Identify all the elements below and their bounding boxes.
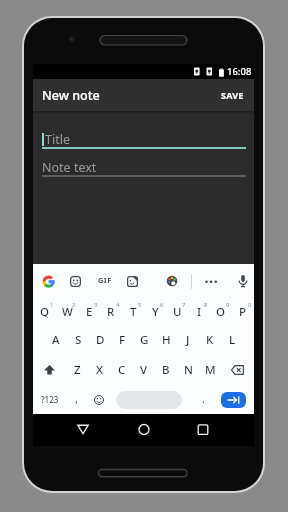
staticText: 2 <box>72 301 76 309</box>
button[interactable] <box>127 276 138 287</box>
button[interactable] <box>116 391 182 409</box>
button[interactable] <box>204 274 218 288</box>
staticText: C <box>118 362 126 378</box>
staticText: 3 <box>94 301 98 309</box>
button[interactable] <box>237 274 249 289</box>
staticText: 7 <box>182 301 186 309</box>
staticText: A <box>52 332 60 348</box>
button[interactable]: A <box>44 325 67 355</box>
staticText: 9 <box>226 301 230 309</box>
button[interactable]: X <box>89 355 111 385</box>
button[interactable]: , <box>69 385 85 414</box>
button[interactable]: C <box>111 355 133 385</box>
button[interactable]: B <box>155 355 177 385</box>
button[interactable]: Y <box>144 295 166 325</box>
button[interactable] <box>33 355 66 385</box>
staticText: B <box>162 362 170 378</box>
staticText: F <box>119 332 126 348</box>
staticText: GIF <box>98 275 112 285</box>
button[interactable]: I <box>188 295 210 325</box>
staticText: 5 <box>138 301 142 309</box>
staticText: J <box>186 332 190 348</box>
button[interactable]: . <box>196 385 211 414</box>
button[interactable]: E <box>78 295 100 325</box>
staticText: Y <box>152 304 159 320</box>
staticText: 4 <box>116 301 120 309</box>
staticText: D <box>96 332 105 348</box>
button[interactable]: H <box>155 325 177 355</box>
staticText: N <box>184 362 193 378</box>
staticText: 6 <box>160 301 164 309</box>
staticText: New note <box>42 87 100 104</box>
button[interactable]: Q <box>33 295 56 325</box>
staticText: SAVE <box>221 89 244 101</box>
button[interactable]: S <box>67 325 89 355</box>
button[interactable]: Title <box>42 131 246 148</box>
button[interactable]: GIF <box>95 273 114 287</box>
button[interactable] <box>138 424 150 435</box>
button[interactable]: N <box>177 355 199 385</box>
button[interactable] <box>77 424 89 435</box>
button[interactable]: R <box>100 295 122 325</box>
button[interactable]: SAVE <box>221 79 244 111</box>
button[interactable] <box>197 424 209 435</box>
staticText: I <box>197 304 202 320</box>
staticText: . <box>202 391 205 406</box>
staticText: H <box>162 332 171 348</box>
staticText: G <box>140 332 149 348</box>
button[interactable]: D <box>89 325 111 355</box>
button[interactable]: W <box>56 295 78 325</box>
staticText: T <box>130 304 137 320</box>
staticText: Note text <box>42 159 97 176</box>
staticText: M <box>205 362 216 378</box>
staticText: ?123 <box>41 394 59 405</box>
button[interactable]: V <box>133 355 155 385</box>
staticText: W <box>62 304 73 320</box>
button[interactable]: ?123 <box>36 385 63 414</box>
staticText: 0 <box>248 301 252 309</box>
staticText: X <box>96 362 104 378</box>
staticText: E <box>86 304 93 320</box>
button[interactable]: T <box>122 295 144 325</box>
button[interactable] <box>93 385 104 414</box>
staticText: P <box>239 304 247 320</box>
button[interactable]: L <box>221 325 243 355</box>
button[interactable]: U <box>166 295 188 325</box>
staticText: V <box>140 362 148 378</box>
staticText: Title <box>45 131 70 148</box>
button[interactable]: O <box>210 295 232 325</box>
staticText: R <box>107 304 115 320</box>
button[interactable] <box>39 272 58 291</box>
button[interactable]: K <box>199 325 221 355</box>
button[interactable] <box>70 276 81 287</box>
button[interactable]: P <box>232 295 254 325</box>
staticText: S <box>75 332 82 348</box>
button[interactable] <box>221 392 246 408</box>
staticText: Q <box>40 304 50 320</box>
staticText: Z <box>74 362 81 378</box>
button[interactable]: M <box>199 355 221 385</box>
button[interactable]: Z <box>66 355 89 385</box>
button[interactable]: J <box>177 325 199 355</box>
staticText: , <box>75 391 79 406</box>
staticText: O <box>216 304 226 320</box>
button[interactable]: Note text <box>42 159 246 176</box>
button[interactable] <box>166 275 178 287</box>
button[interactable]: F <box>111 325 133 355</box>
staticText: U <box>173 304 182 320</box>
staticText: 1 <box>50 301 54 309</box>
button[interactable] <box>221 355 254 385</box>
button[interactable]: G <box>133 325 155 355</box>
staticText: 8 <box>204 301 208 309</box>
staticText: L <box>229 332 236 348</box>
staticText: 16:08 <box>227 65 252 78</box>
staticText: K <box>206 332 214 348</box>
